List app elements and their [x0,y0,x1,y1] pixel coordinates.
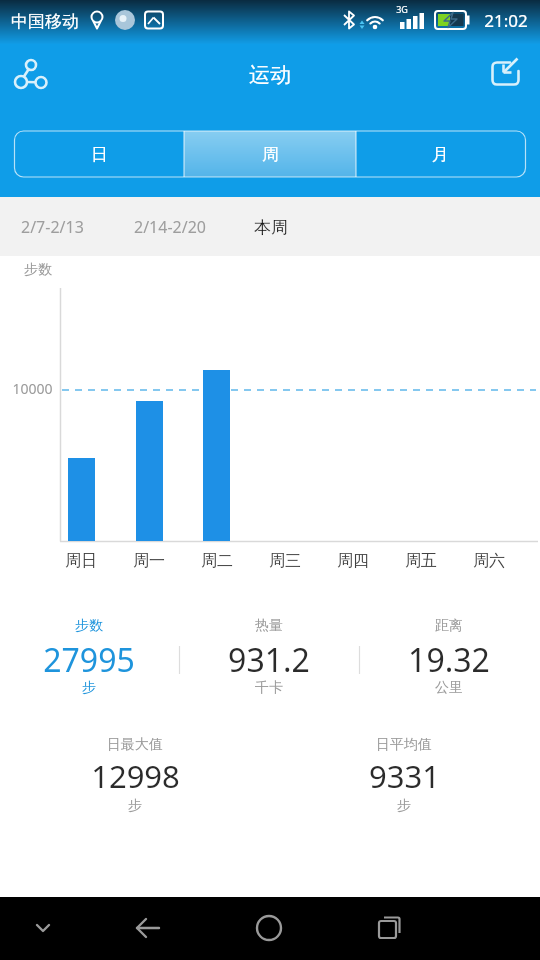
staticText: 周四 [337,551,369,571]
staticText: 21:02 [484,9,528,32]
button[interactable]: 月 [356,131,525,177]
staticText: 周六 [473,551,505,571]
staticText: 运动 [249,62,291,88]
staticText: 日 [91,144,108,165]
staticText: 931.2 [228,638,310,682]
button[interactable] [486,52,532,98]
staticText: 千卡 [255,679,283,697]
staticText: 周三 [269,551,301,571]
staticText: 周日 [65,551,97,571]
button[interactable] [19,904,67,952]
button[interactable] [8,52,54,98]
staticText: 27995 [43,638,135,682]
button[interactable]: 日 [15,131,184,177]
staticText: 周二 [201,551,233,571]
staticText: 周 [262,144,279,165]
staticText: 9331 [369,755,440,797]
button[interactable] [245,904,293,952]
staticText: 10000 [12,379,53,398]
staticText: 公里 [435,679,463,697]
button[interactable]: 周 [184,131,356,177]
button[interactable]: 2/14-2/20 [124,204,216,250]
staticText: 日最大值 [107,736,163,754]
button[interactable] [365,904,413,952]
staticText: 步 [397,797,411,815]
staticText: 3G [396,3,408,15]
staticText: 步 [82,679,96,697]
staticText: 距离 [435,617,463,635]
staticText: 月 [432,144,449,165]
staticText: 本周 [254,217,288,238]
staticText: 周一 [133,551,165,571]
staticText: 日平均值 [376,736,432,754]
staticText: 中国移动 [11,11,79,32]
staticText: 19.32 [408,638,490,682]
staticText: 步 [128,797,142,815]
button[interactable]: 本周 [240,204,302,250]
staticText: 2/7-2/13 [21,216,84,238]
staticText: 步数 [24,261,52,279]
staticText: 热量 [255,617,283,635]
staticText: 12998 [91,755,180,797]
staticText: 2/14-2/20 [134,216,206,238]
staticText: 周五 [405,551,437,571]
button[interactable]: 2/7-2/13 [7,204,97,250]
button[interactable] [124,904,172,952]
staticText: 步数 [75,617,103,635]
